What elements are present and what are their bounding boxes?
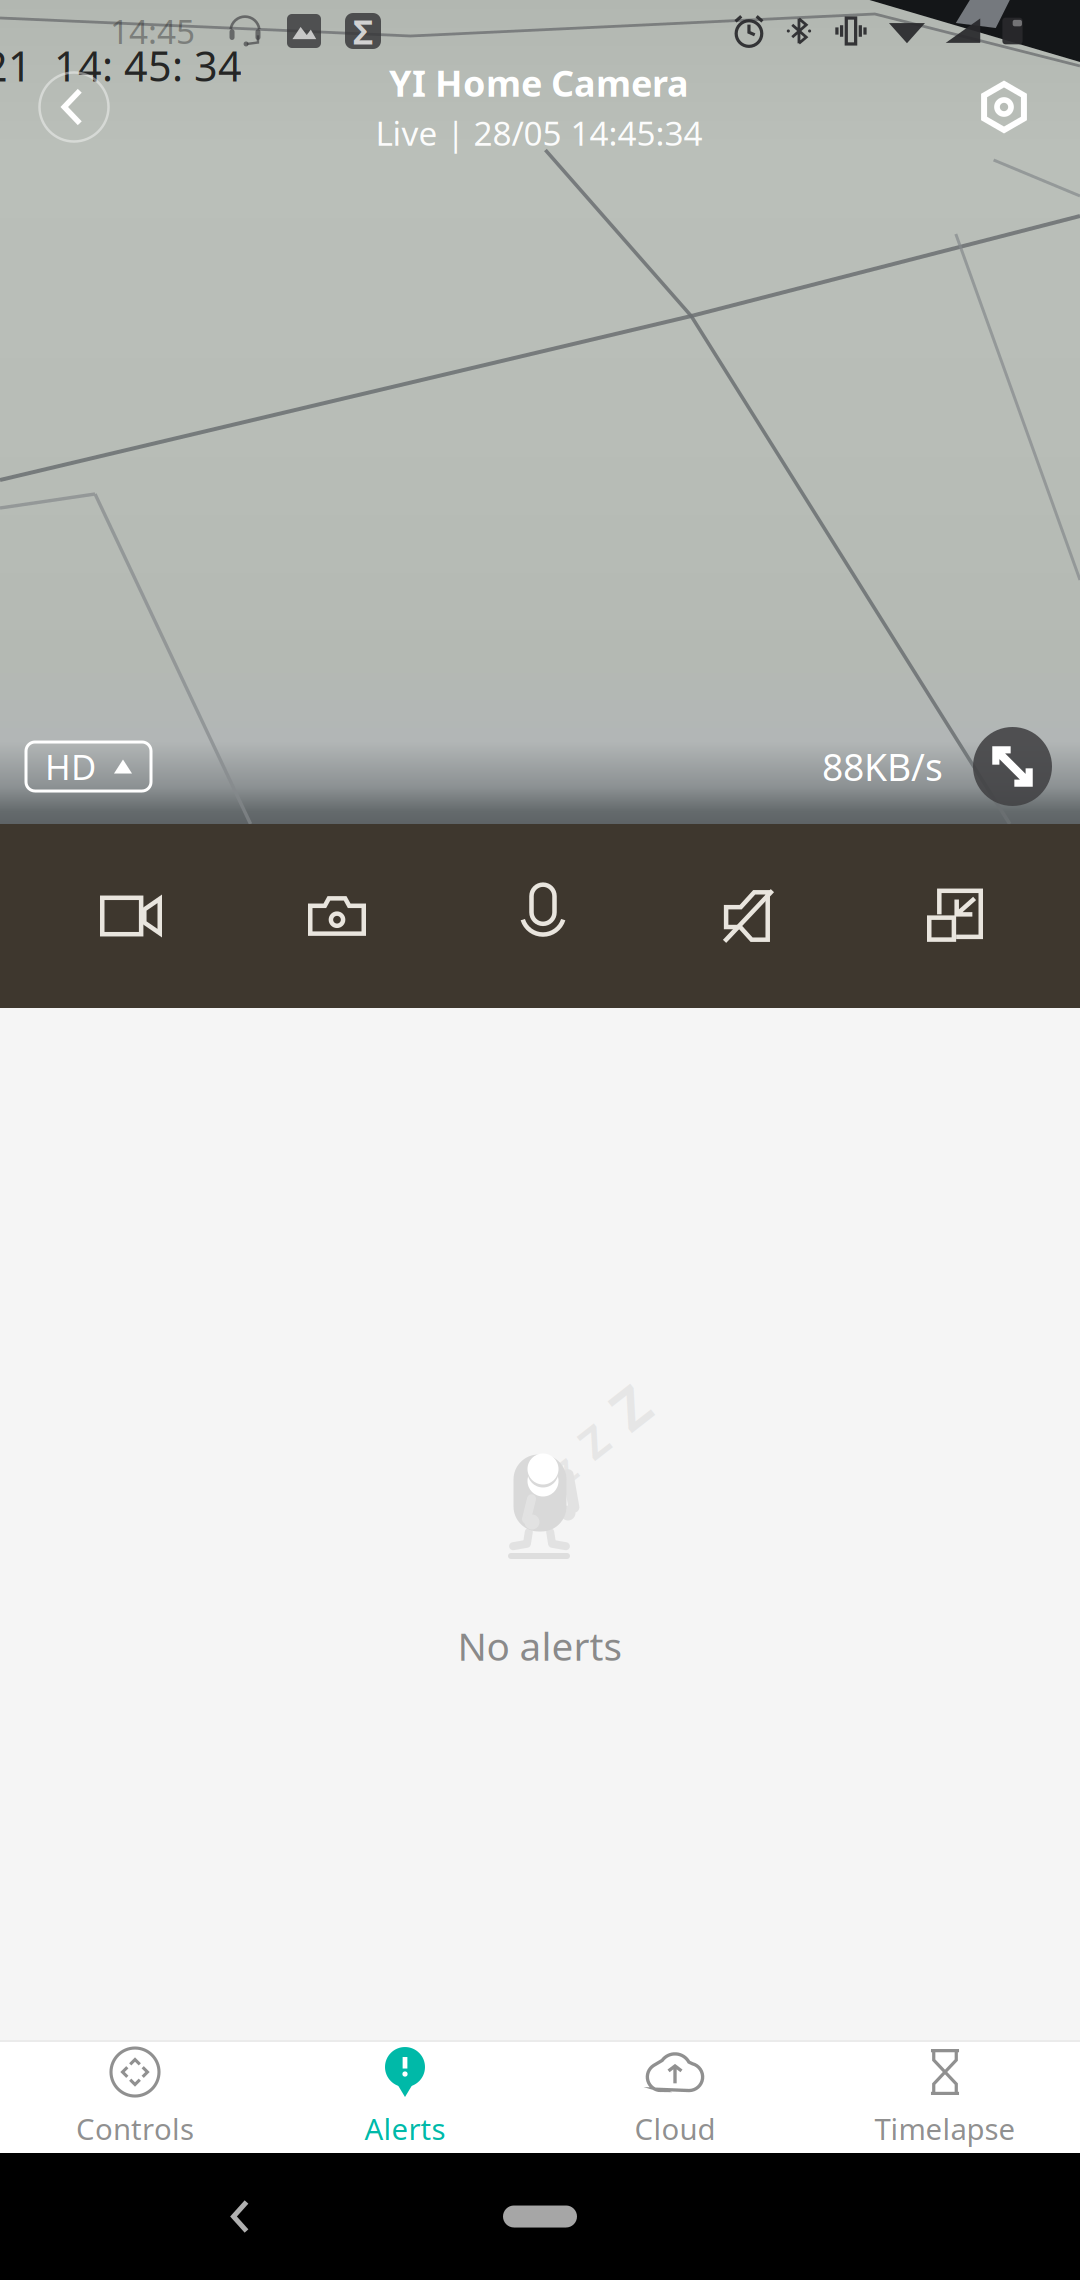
staticText: Alerts bbox=[364, 2109, 445, 2148]
staticText: Controls bbox=[76, 2109, 194, 2148]
staticText: No alerts bbox=[457, 1620, 622, 1671]
button[interactable]: Mute bbox=[646, 824, 852, 1008]
button[interactable]: Take snapshot bbox=[234, 824, 440, 1008]
button[interactable]: Cloud bbox=[540, 2042, 810, 2153]
staticText: HD bbox=[45, 743, 96, 789]
staticText: Cloud bbox=[634, 2109, 715, 2148]
button[interactable]: HD bbox=[26, 742, 151, 791]
button[interactable]: Back bbox=[200, 2176, 280, 2256]
button[interactable]: Controls bbox=[0, 2042, 270, 2153]
button[interactable]: Back bbox=[32, 65, 116, 149]
button[interactable]: Camera settings bbox=[962, 65, 1046, 149]
staticText: Live | 28/05 14:45:34 bbox=[375, 111, 702, 155]
button[interactable]: Picture in picture bbox=[852, 824, 1058, 1008]
button[interactable]: Record video bbox=[28, 824, 234, 1008]
staticText: Z bbox=[556, 1450, 575, 1492]
staticText: 14:45 bbox=[110, 9, 195, 53]
staticText: Σ bbox=[353, 8, 373, 54]
staticText: 88KB/s bbox=[822, 742, 943, 791]
staticText: Z bbox=[614, 1370, 646, 1444]
button[interactable]: Alerts bbox=[270, 2042, 540, 2153]
staticText: Z bbox=[581, 1413, 606, 1469]
staticText: 21 14: 45: 34 bbox=[0, 38, 242, 93]
button[interactable]: Full screen bbox=[973, 727, 1052, 806]
staticText: Timelapse bbox=[874, 2109, 1015, 2148]
button[interactable]: Talk bbox=[440, 824, 646, 1008]
button[interactable]: Timelapse bbox=[810, 2042, 1080, 2153]
staticText: YI Home Camera bbox=[389, 59, 689, 107]
